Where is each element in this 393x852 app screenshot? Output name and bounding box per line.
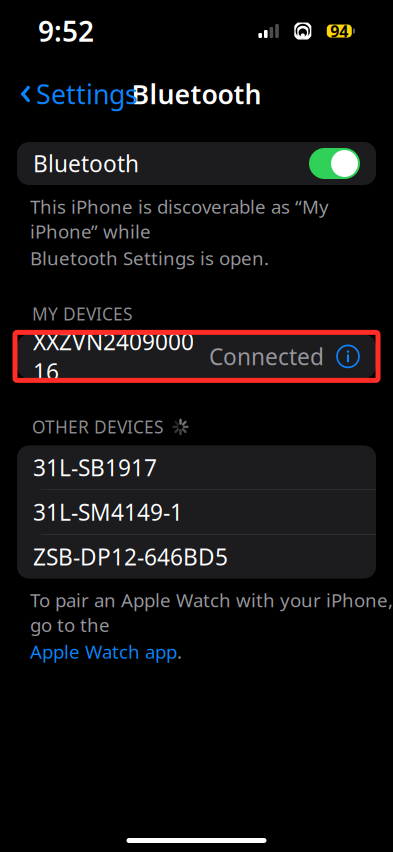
staticText: Bluetooth Settings is open. (30, 246, 269, 270)
button[interactable]: 31L-SB1917 (17, 445, 376, 489)
button[interactable]: Bluetooth (17, 142, 376, 185)
staticText: To pair an Apple Watch with your iPhone,… (30, 588, 393, 637)
button[interactable]: ZSB-DP12-646BD5 (17, 535, 376, 579)
staticText: Settings (36, 76, 138, 112)
staticText: 9:52 (38, 12, 94, 50)
staticText: MY DEVICES (32, 302, 133, 325)
button[interactable]: Settings (18, 70, 140, 118)
staticText: Bluetooth (131, 76, 261, 112)
staticText: 31L-SM4149-1 (33, 497, 183, 527)
staticText: Connected (209, 341, 324, 371)
staticText: OTHER DEVICES (32, 415, 164, 438)
staticText: Apple Watch app (30, 639, 177, 664)
staticText: . (177, 639, 182, 664)
staticText: 94 (330, 20, 348, 42)
button[interactable]: Apple Watch app (30, 639, 182, 664)
staticText: This iPhone is discoverable as “My iPhon… (30, 194, 329, 244)
staticText: XXZVN240900016 (33, 326, 194, 386)
staticText: Bluetooth (33, 148, 139, 178)
button[interactable]: 31L-SM4149-1 (17, 490, 376, 534)
staticText: 31L-SB1917 (33, 452, 157, 482)
staticText: ZSB-DP12-646BD5 (33, 542, 228, 572)
button[interactable]: XXZVN240900016 (17, 334, 376, 378)
